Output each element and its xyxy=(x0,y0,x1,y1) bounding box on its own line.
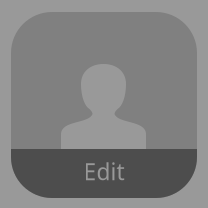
staticText: Edit xyxy=(83,156,124,186)
button[interactable]: Edit xyxy=(11,149,197,198)
